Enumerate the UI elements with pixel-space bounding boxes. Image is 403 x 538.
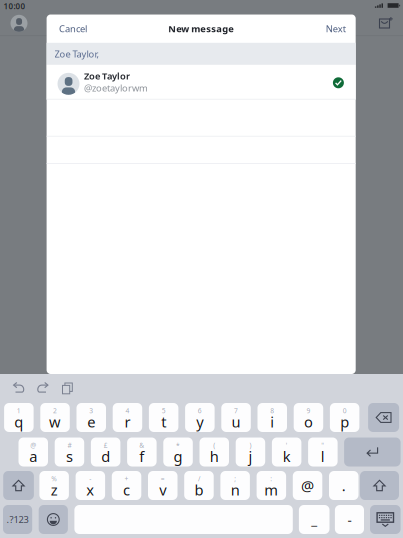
button[interactable]: Redo: [36, 382, 49, 393]
button[interactable]: Return: [344, 437, 401, 466]
button[interactable]: ': [272, 437, 301, 466]
staticText: o: [304, 412, 313, 431]
staticText: -: [89, 474, 91, 483]
staticText: .: [342, 476, 346, 495]
staticText: _: [311, 511, 317, 528]
staticText: @: [30, 441, 36, 450]
staticText: 10:00: [3, 1, 25, 11]
button[interactable]: 9: [294, 403, 323, 432]
button[interactable]: (: [199, 437, 229, 466]
button[interactable]: New message: [379, 17, 393, 30]
button[interactable]: 0: [330, 403, 359, 432]
button[interactable]: 4: [113, 403, 142, 432]
button[interactable]: /: [184, 471, 214, 500]
staticText: Zoe Taylor: [84, 70, 130, 82]
staticText: q: [14, 412, 23, 431]
staticText: b: [194, 480, 203, 499]
staticText: New message: [168, 22, 234, 35]
staticText: 6: [198, 406, 202, 415]
staticText: @zoetaylorwm: [84, 82, 148, 94]
staticText: ': [286, 441, 288, 450]
button[interactable]: 1: [4, 403, 34, 432]
button[interactable]: £: [91, 437, 120, 466]
staticText: ;: [234, 474, 236, 483]
button[interactable]: Shift: [3, 471, 34, 500]
staticText: w: [49, 412, 61, 431]
staticText: p: [340, 412, 349, 431]
staticText: 0: [343, 406, 347, 415]
button[interactable]: #: [55, 437, 84, 466]
button[interactable]: @: [293, 471, 322, 500]
button[interactable]: -: [76, 471, 105, 500]
button[interactable]: Next: [306, 14, 346, 43]
button[interactable]: Hide keyboard: [370, 505, 401, 534]
staticText: f: [139, 446, 144, 466]
staticText: /: [198, 474, 200, 483]
button[interactable]: 7: [221, 403, 251, 432]
button[interactable]: %: [39, 471, 69, 500]
staticText: h: [210, 446, 219, 466]
staticText: *: [176, 441, 180, 450]
staticText: (: [213, 441, 215, 450]
staticText: 5: [162, 406, 166, 415]
staticText: l: [321, 446, 325, 466]
staticText: j: [248, 446, 252, 466]
button[interactable]: _: [299, 505, 329, 534]
staticText: s: [66, 446, 73, 466]
button[interactable]: ;: [220, 471, 250, 500]
button[interactable]: =: [148, 471, 177, 500]
button[interactable]: 5: [149, 403, 178, 432]
staticText: g: [174, 446, 183, 466]
button[interactable]: ": [308, 437, 338, 466]
staticText: £: [104, 441, 108, 450]
staticText: 2: [53, 406, 57, 415]
staticText: 3: [89, 406, 93, 415]
staticText: v: [159, 480, 166, 499]
staticText: 9: [306, 406, 310, 415]
staticText: d: [101, 446, 110, 466]
button[interactable]: .: [329, 471, 358, 500]
staticText: 4: [125, 406, 129, 415]
button[interactable]: Delete: [368, 403, 399, 432]
button[interactable]: Cancel: [59, 14, 105, 43]
button[interactable]: -: [335, 505, 364, 534]
button[interactable]: +: [112, 471, 141, 500]
button[interactable]: Paste: [62, 382, 73, 395]
staticText: Next: [326, 22, 346, 35]
staticText: i: [270, 412, 274, 431]
staticText: 8: [270, 406, 274, 415]
staticText: =: [161, 474, 165, 483]
staticText: m: [264, 480, 278, 499]
staticText: a: [29, 446, 37, 466]
staticText: c: [123, 480, 130, 499]
button[interactable]: :: [257, 471, 286, 500]
button[interactable]: &: [127, 437, 157, 466]
button[interactable]: ): [236, 437, 265, 466]
staticText: Cancel: [59, 22, 87, 35]
button[interactable]: *: [163, 437, 193, 466]
button[interactable]: .?123: [3, 505, 32, 534]
staticText: #: [67, 441, 71, 450]
staticText: t: [161, 412, 166, 431]
button[interactable]: Undo: [12, 382, 25, 393]
button[interactable]: Emoji: [39, 505, 68, 534]
staticText: ): [249, 441, 251, 450]
staticText: x: [86, 480, 94, 499]
button[interactable]: 2: [40, 403, 70, 432]
staticText: ": [321, 441, 324, 450]
staticText: r: [124, 412, 130, 431]
button[interactable]: 8: [257, 403, 287, 432]
staticText: :: [270, 474, 272, 483]
button[interactable]: 3: [76, 403, 106, 432]
staticText: &: [139, 441, 144, 450]
staticText: 7: [234, 406, 238, 415]
button[interactable]: Shift: [360, 471, 399, 500]
staticText: %: [51, 474, 57, 483]
staticText: u: [232, 412, 241, 431]
staticText: k: [283, 446, 291, 466]
button[interactable]: @: [18, 437, 48, 466]
button[interactable]: 6: [185, 403, 215, 432]
button[interactable]: Zoe Taylor: [47, 65, 356, 99]
staticText: e: [87, 412, 95, 431]
